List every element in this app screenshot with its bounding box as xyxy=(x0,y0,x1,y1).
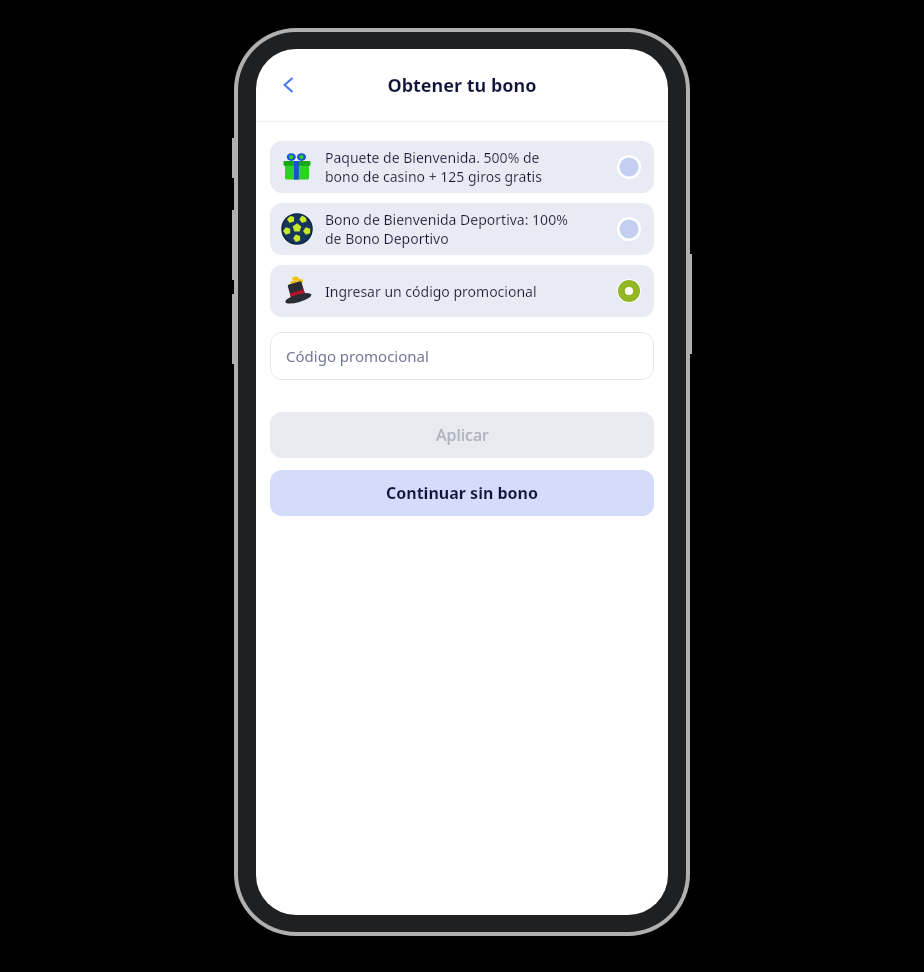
staticText: Obtener tu bono xyxy=(387,73,537,98)
button[interactable]: Aplicar xyxy=(270,412,654,458)
button[interactable]: Paquete de Bienvenida. 500% de xyxy=(270,141,654,193)
button[interactable]: Código promocional xyxy=(270,332,654,380)
staticText: Paquete de Bienvenida. 500% de xyxy=(325,148,540,167)
staticText: Aplicar xyxy=(436,424,489,446)
staticText: de Bono Deportivo xyxy=(325,229,449,248)
button[interactable]: Continuar sin bono xyxy=(270,470,654,516)
button[interactable]: Ingresar un código promocional xyxy=(270,265,654,317)
staticText: Código promocional xyxy=(286,346,429,366)
staticText: Bono de Bienvenida Deportiva: 100% xyxy=(325,210,568,229)
button[interactable]: Back xyxy=(266,62,312,108)
staticText: Ingresar un código promocional xyxy=(325,282,537,301)
button[interactable]: Bono de Bienvenida Deportiva: 100% xyxy=(270,203,654,255)
staticText: Continuar sin bono xyxy=(386,482,538,504)
staticText: bono de casino + 125 giros gratis xyxy=(325,167,542,186)
